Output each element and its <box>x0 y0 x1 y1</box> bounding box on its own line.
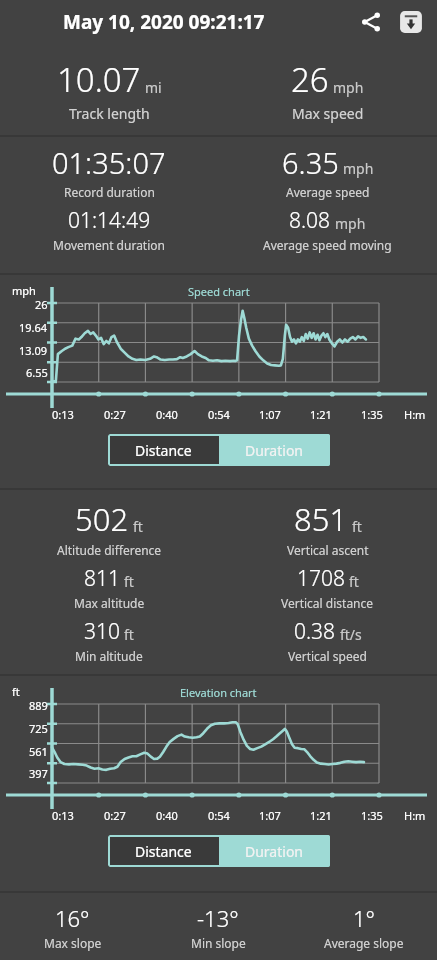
staticText: Speed chart <box>188 284 250 299</box>
staticText: mi <box>145 78 162 97</box>
staticText: Average speed moving <box>263 237 392 253</box>
staticText: Max speed <box>292 104 364 123</box>
staticText: 26 <box>35 297 48 309</box>
staticText: mph <box>333 78 364 97</box>
staticText: 01:14:49 <box>68 206 151 235</box>
staticText: 0:13 <box>52 407 74 422</box>
staticText: ft <box>124 572 134 591</box>
staticText: ft <box>349 572 359 591</box>
button[interactable]: Share <box>351 2 391 42</box>
staticText: Min altitude <box>75 648 143 664</box>
staticText: H:m <box>404 808 426 823</box>
staticText: Movement duration <box>53 237 165 253</box>
staticText: 502 <box>75 498 129 540</box>
staticText: 0:40 <box>156 407 178 422</box>
staticText: 13.09 <box>19 343 48 355</box>
staticText: Vertical ascent <box>287 542 369 558</box>
staticText: 1° <box>353 903 375 933</box>
staticText: Duration <box>245 842 304 861</box>
staticText: 16° <box>55 903 90 933</box>
button[interactable]: Distance <box>108 434 219 466</box>
button[interactable]: Duration <box>219 835 330 867</box>
staticText: Max altitude <box>74 595 145 611</box>
staticText: Vertical distance <box>281 595 374 611</box>
staticText: Elevation chart <box>180 685 257 700</box>
staticText: 0:27 <box>104 808 126 823</box>
staticText: Distance <box>135 842 192 861</box>
staticText: May 10, 2020 09:21:17 <box>63 9 265 35</box>
staticText: 10.07 <box>57 57 141 102</box>
staticText: 561 <box>29 744 48 756</box>
staticText: Duration <box>245 441 304 460</box>
staticText: 0:40 <box>156 808 178 823</box>
staticText: 0:27 <box>104 407 126 422</box>
staticText: mph <box>335 214 366 233</box>
staticText: -13° <box>197 903 239 933</box>
staticText: 397 <box>29 766 48 778</box>
staticText: 851 <box>294 498 348 540</box>
staticText: 310 <box>84 617 120 646</box>
staticText: Vertical speed <box>288 648 367 664</box>
staticText: 811 <box>84 564 120 593</box>
staticText: Average speed <box>286 184 370 200</box>
staticText: 0:54 <box>208 808 230 823</box>
staticText: Altitude difference <box>57 542 162 558</box>
button[interactable]: Distance <box>108 835 219 867</box>
staticText: Record duration <box>64 184 155 200</box>
staticText: ft/s <box>340 625 362 644</box>
staticText: 725 <box>29 721 48 733</box>
staticText: Max slope <box>44 935 102 951</box>
staticText: Average slope <box>324 935 404 951</box>
staticText: 6.35 <box>282 143 339 182</box>
staticText: mph <box>343 159 374 178</box>
staticText: ft <box>133 517 143 536</box>
staticText: Min slope <box>191 935 246 951</box>
staticText: 0:54 <box>208 407 230 422</box>
staticText: Track length <box>69 104 150 123</box>
staticText: 1:07 <box>259 407 281 422</box>
staticText: Distance <box>135 441 192 460</box>
staticText: 889 <box>29 698 48 710</box>
staticText: ft <box>12 684 20 699</box>
staticText: 1:35 <box>361 407 383 422</box>
button[interactable]: Duration <box>219 434 330 466</box>
staticText: 1:07 <box>259 808 281 823</box>
staticText: 1:35 <box>361 808 383 823</box>
staticText: H:m <box>404 407 426 422</box>
staticText: 01:35:07 <box>52 143 166 182</box>
staticText: 1708 <box>297 564 345 593</box>
staticText: 6.55 <box>26 365 48 377</box>
staticText: 1:21 <box>310 808 332 823</box>
button[interactable]: Export <box>391 2 431 42</box>
staticText: 26 <box>291 57 329 102</box>
staticText: 1:21 <box>310 407 332 422</box>
staticText: ft <box>124 625 134 644</box>
staticText: ft <box>352 517 362 536</box>
staticText: 8.08 <box>289 206 331 235</box>
staticText: 0:13 <box>52 808 74 823</box>
staticText: 0.38 <box>294 617 336 646</box>
staticText: 19.64 <box>19 320 48 332</box>
staticText: mph <box>12 283 36 298</box>
